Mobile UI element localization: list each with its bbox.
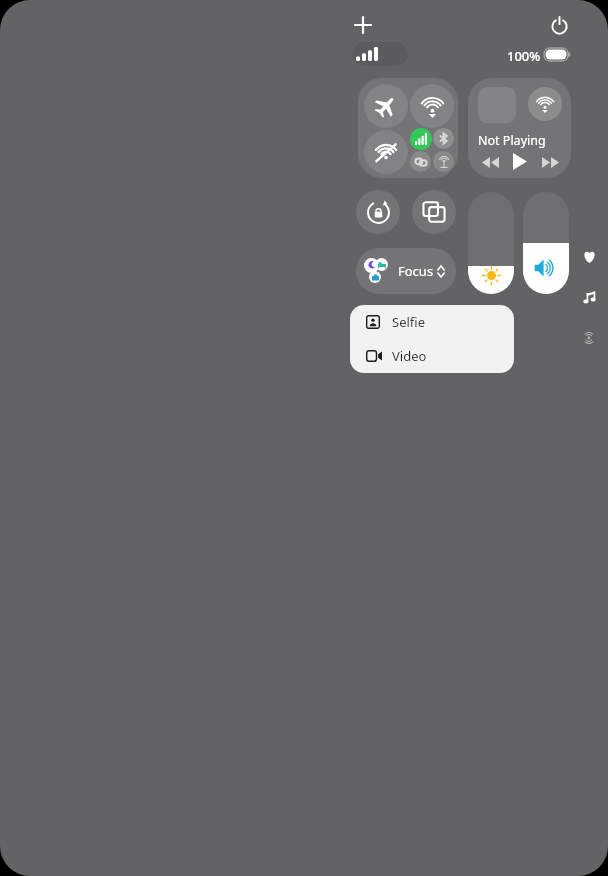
button[interactable]: Music <box>578 286 600 308</box>
button[interactable]: Airplane Mode <box>364 84 408 128</box>
button[interactable]: Previous <box>478 151 502 173</box>
button[interactable]: Brightness <box>468 192 514 294</box>
button[interactable]: Broadcast <box>578 327 600 349</box>
button[interactable]: VPN <box>410 151 431 172</box>
button[interactable]: Volume <box>523 192 569 294</box>
staticText: Focus <box>398 262 434 280</box>
staticText: Selfie <box>392 313 425 331</box>
button[interactable]: AirPlay <box>528 87 562 121</box>
button[interactable]: Selfie <box>350 305 514 339</box>
staticText: Video <box>392 347 427 365</box>
button[interactable]: Power <box>542 8 576 42</box>
button[interactable]: Rotation Lock <box>356 190 400 234</box>
button[interactable]: Cellular Data <box>410 128 432 150</box>
staticText: 100% <box>507 47 541 65</box>
button[interactable]: AirDrop <box>410 84 454 128</box>
button[interactable]: Focus <box>356 248 456 294</box>
button[interactable]: Play <box>508 149 532 173</box>
staticText: Not Playing <box>478 132 546 149</box>
button[interactable]: Add control <box>346 8 380 42</box>
button[interactable]: Health <box>578 245 600 267</box>
button[interactable]: Screen Mirroring <box>412 190 456 234</box>
button[interactable]: Video <box>350 339 514 373</box>
button[interactable]: Next <box>538 151 562 173</box>
button[interactable]: Wi-Fi <box>364 130 408 174</box>
button[interactable]: Personal Hotspot <box>433 151 454 172</box>
button[interactable]: AirPlay <box>468 78 571 178</box>
button[interactable]: Bluetooth <box>433 128 454 149</box>
